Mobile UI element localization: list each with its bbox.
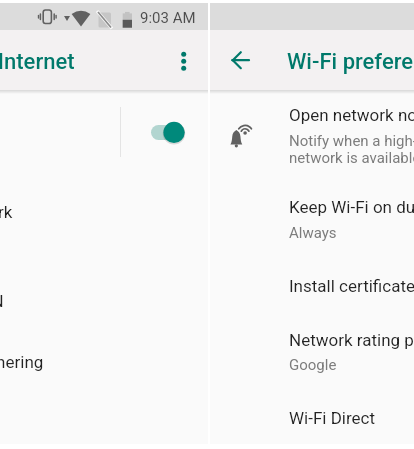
staticText: Wi-Fi preferences: [287, 49, 414, 75]
staticText: Open network notification: [289, 105, 414, 125]
staticText: Always: [289, 224, 337, 242]
button[interactable]: Install certificate: [210, 266, 414, 296]
button[interactable]: Hotspot & tethering: [0, 332, 208, 388]
button[interactable]: More options: [172, 44, 196, 76]
staticText: Hotspot & tethering: [0, 352, 44, 372]
staticText: VPN: [0, 291, 4, 311]
button[interactable]: Navigate up: [228, 48, 253, 73]
button[interactable]: Mobile network: [0, 182, 208, 238]
button[interactable]: Network rating provider: [210, 320, 414, 366]
button[interactable]: Open network notification: [210, 95, 414, 153]
staticText: Mobile network: [0, 202, 13, 222]
staticText: network is available: [289, 149, 414, 167]
button[interactable]: Keep Wi-Fi on during sleep: [210, 187, 414, 233]
staticText: Notify when a high-quality public: [289, 132, 414, 150]
button[interactable]: [0, 30, 208, 90]
button[interactable]: [0, 94, 208, 160]
staticText: Keep Wi-Fi on during sleep: [289, 197, 414, 217]
button[interactable]: Wi-Fi Direct: [210, 398, 414, 428]
staticText: Network & Internet: [0, 49, 75, 75]
staticText: Network rating provider: [289, 330, 414, 350]
staticText: Wi-Fi Direct: [289, 408, 376, 428]
staticText: 9:03 AM: [140, 9, 196, 27]
staticText: Install certificate: [289, 276, 414, 296]
button[interactable]: VPN: [0, 271, 208, 327]
staticText: Google: [289, 356, 337, 374]
button[interactable]: Wi-Fi on: [148, 119, 188, 146]
